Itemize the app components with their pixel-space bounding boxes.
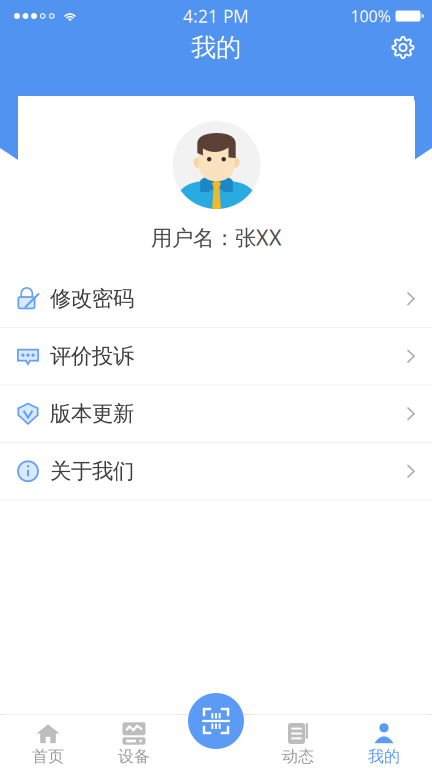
staticText: 设备 (118, 746, 150, 766)
staticText: 关于我们 (50, 458, 134, 484)
button[interactable]: 版本更新 (0, 385, 432, 443)
button[interactable]: 关于我们 (0, 443, 432, 500)
staticText: 我的 (191, 32, 241, 63)
button[interactable]: 动态 (255, 714, 341, 768)
button[interactable]: 我的 (341, 714, 427, 768)
button[interactable]: Settings (381, 25, 425, 69)
staticText: 动态 (282, 746, 314, 766)
staticText: 100% (350, 5, 390, 27)
button[interactable]: 修改密码 (0, 270, 432, 328)
staticText: 版本更新 (50, 401, 134, 427)
staticText: 评价投诉 (50, 343, 134, 369)
staticText: 首页 (32, 746, 64, 766)
button[interactable]: Scan (188, 693, 244, 749)
button[interactable]: 评价投诉 (0, 328, 432, 385)
button[interactable]: 设备 (91, 714, 177, 768)
staticText: 用户名：张XX (151, 223, 282, 251)
staticText: 我的 (368, 746, 400, 766)
staticText: 修改密码 (50, 286, 134, 312)
button[interactable]: 首页 (5, 714, 91, 768)
staticText: 4:21 PM (183, 4, 249, 27)
